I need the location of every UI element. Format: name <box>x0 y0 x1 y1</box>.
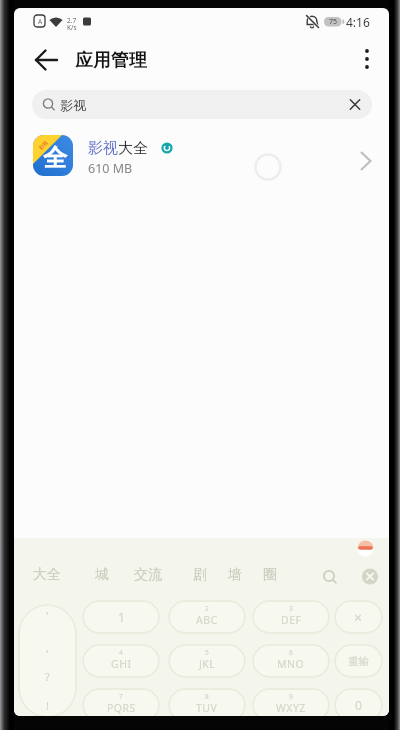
staticText: 影视 <box>37 139 49 151</box>
button[interactable]: 4 <box>82 644 160 678</box>
staticText: 重输 <box>348 655 369 668</box>
staticText: ' <box>46 608 49 623</box>
button[interactable] <box>343 92 367 116</box>
button[interactable]: 9 <box>252 688 330 716</box>
staticText: 8 <box>205 692 209 701</box>
button[interactable]: 3 <box>252 600 330 634</box>
staticText: 9 <box>289 692 293 701</box>
button[interactable] <box>19 128 384 184</box>
staticText: 2 <box>205 604 209 613</box>
staticText: 应用管理 <box>75 49 147 71</box>
staticText: ABC <box>196 613 218 627</box>
button[interactable] <box>357 540 374 557</box>
button[interactable] <box>32 90 372 119</box>
staticText: 2.7 <box>67 16 77 25</box>
staticText: 墙 <box>228 566 242 584</box>
staticText: 城 <box>95 566 109 584</box>
staticText: 影视 <box>60 97 86 113</box>
button[interactable]: × <box>334 600 383 634</box>
staticText: 圈 <box>263 566 277 584</box>
button[interactable]: 重输 <box>334 644 383 678</box>
staticText: MNO <box>277 657 305 671</box>
staticText: 剧 <box>193 566 207 584</box>
staticText: WXYZ <box>276 701 306 715</box>
staticText: 大全 <box>118 139 148 158</box>
button[interactable] <box>355 45 379 73</box>
button[interactable]: 6 <box>252 644 330 678</box>
button[interactable]: 8 <box>168 688 246 716</box>
staticText: K/s <box>67 23 77 32</box>
staticText: TUV <box>196 701 218 715</box>
staticText: ? <box>45 669 50 684</box>
staticText: 交流 <box>134 566 162 584</box>
staticText: , <box>46 640 49 655</box>
staticText: 大全 <box>33 566 61 584</box>
staticText: 1 <box>118 609 125 625</box>
staticText: 6 <box>289 648 293 657</box>
staticText: 4 <box>119 648 123 657</box>
staticText: 全 <box>43 143 67 173</box>
staticText: JKL <box>199 657 216 671</box>
button[interactable] <box>28 46 62 74</box>
staticText: A <box>38 17 43 26</box>
button[interactable]: 0 <box>334 688 383 716</box>
button[interactable]: 1 <box>82 600 160 634</box>
staticText: 75 <box>329 17 338 27</box>
button[interactable]: 2 <box>168 600 246 634</box>
staticText: × <box>354 608 363 627</box>
staticText: 0 <box>355 697 362 713</box>
staticText: 7 <box>119 692 123 701</box>
button[interactable] <box>18 604 77 716</box>
staticText: 4:16 <box>346 14 370 30</box>
staticText: PQRS <box>107 701 136 715</box>
staticText: 影视 <box>88 139 118 158</box>
button[interactable]: 5 <box>168 644 246 678</box>
button[interactable]: 7 <box>82 688 160 716</box>
staticText: DEF <box>281 613 302 627</box>
staticText: 3 <box>289 604 293 613</box>
staticText: GHI <box>111 657 132 671</box>
staticText: 610 MB <box>88 160 133 177</box>
staticText: ! <box>46 698 49 713</box>
button[interactable] <box>362 568 378 584</box>
staticText: 5 <box>205 648 209 657</box>
